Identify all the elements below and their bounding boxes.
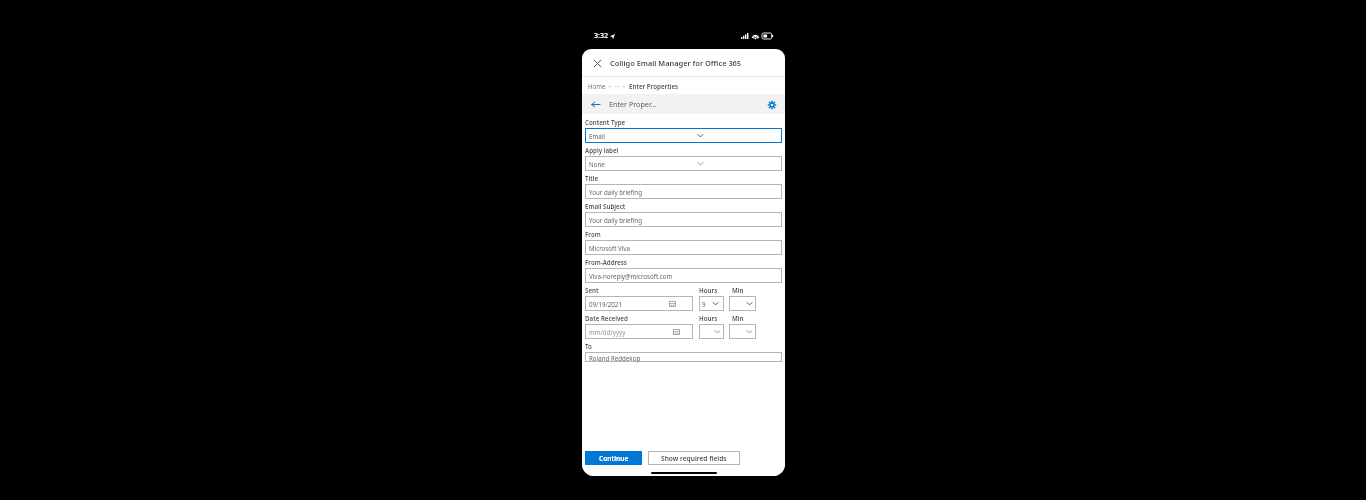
staticText: Date Received bbox=[585, 314, 628, 322]
button[interactable]: Continue bbox=[585, 451, 642, 465]
staticText: ··· bbox=[615, 82, 620, 90]
staticText: Email bbox=[589, 132, 605, 140]
staticText: Microsoft Viva bbox=[589, 244, 630, 252]
staticText: None bbox=[589, 160, 605, 168]
staticText: › bbox=[620, 82, 629, 90]
staticText: Your daily briefing bbox=[589, 188, 642, 196]
button[interactable]: Your daily briefing bbox=[585, 184, 782, 199]
staticText: From-Address bbox=[585, 258, 627, 266]
button[interactable]: Roland Reddekop bbox=[585, 352, 782, 362]
staticText: Apply label bbox=[585, 146, 619, 154]
button[interactable]: Back bbox=[589, 98, 602, 111]
button[interactable]: Close bbox=[590, 56, 604, 70]
staticText: Hours bbox=[699, 314, 718, 322]
staticText: Sent bbox=[585, 286, 599, 294]
staticText: Your daily briefing bbox=[589, 216, 642, 224]
staticText: Min bbox=[732, 286, 744, 294]
staticText: Title bbox=[585, 174, 599, 182]
button[interactable]: Your daily briefing bbox=[585, 212, 782, 227]
button[interactable]: Microsoft Viva bbox=[585, 240, 782, 255]
staticText: Roland Reddekop bbox=[589, 354, 641, 362]
button[interactable]: Show required fields bbox=[648, 451, 740, 465]
staticText: Colligo Email Manager for Office 365 bbox=[610, 58, 742, 68]
staticText: Min bbox=[732, 314, 744, 322]
button[interactable]: ··· bbox=[615, 82, 620, 90]
staticText: 09/19/2021 bbox=[589, 300, 622, 308]
button[interactable]: 30 bbox=[729, 296, 756, 311]
button[interactable]: Home bbox=[588, 82, 606, 90]
button[interactable]: Email bbox=[585, 128, 782, 143]
staticText: Viva-noreply@microsoft.com bbox=[589, 272, 673, 280]
button[interactable]: mm/dd/yyyy bbox=[585, 324, 693, 339]
staticText: 9 bbox=[702, 300, 706, 308]
staticText: mm/dd/yyyy bbox=[589, 328, 626, 336]
button[interactable]: Viva-noreply@microsoft.com bbox=[585, 268, 782, 283]
staticText: To bbox=[585, 342, 592, 350]
staticText: From bbox=[585, 230, 601, 238]
button[interactable] bbox=[729, 324, 756, 339]
staticText: Home bbox=[588, 82, 606, 90]
button[interactable]: None bbox=[585, 156, 782, 171]
staticText: Enter Proper... bbox=[609, 99, 657, 109]
staticText: Continue bbox=[599, 454, 629, 463]
staticText: › bbox=[606, 82, 615, 90]
staticText: Email Subject bbox=[585, 202, 626, 210]
button[interactable]: 9 bbox=[699, 296, 724, 311]
staticText: Enter Properties bbox=[629, 82, 679, 90]
staticText: Show required fields bbox=[661, 454, 727, 463]
button[interactable] bbox=[699, 324, 724, 339]
staticText: 3:32 bbox=[594, 31, 608, 41]
button[interactable]: Settings bbox=[765, 98, 778, 111]
button[interactable]: 09/19/2021 bbox=[585, 296, 693, 311]
staticText: Hours bbox=[699, 286, 718, 294]
staticText: Content Type bbox=[585, 118, 626, 126]
